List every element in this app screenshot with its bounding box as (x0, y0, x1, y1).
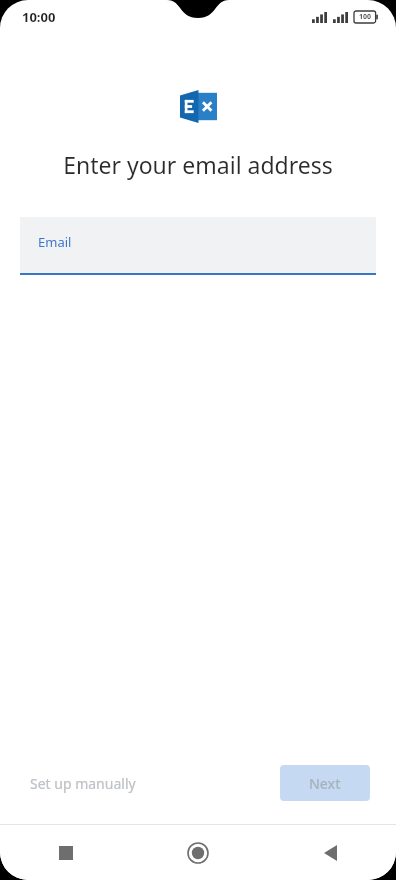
button[interactable]: Back (264, 825, 396, 880)
button[interactable]: Recents (0, 825, 132, 880)
staticText: 10:00 (22, 8, 56, 26)
button[interactable]: Email (20, 217, 376, 275)
button[interactable]: Home (132, 825, 264, 880)
button[interactable]: Set up manually (14, 766, 152, 801)
staticText: 100 (359, 12, 372, 22)
staticText: Next (309, 774, 341, 793)
staticText: Enter your email address (0, 149, 396, 180)
staticText: Set up manually (30, 774, 136, 793)
staticText: Email (38, 233, 72, 251)
button[interactable]: Next (280, 765, 370, 801)
